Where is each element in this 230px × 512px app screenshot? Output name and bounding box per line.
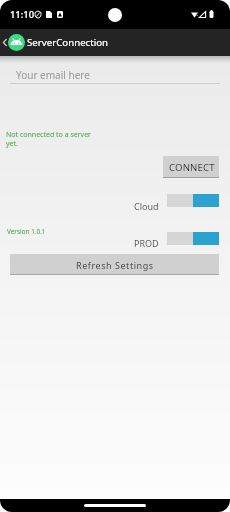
button[interactable]: Toggle: [167, 194, 219, 207]
staticText: Not connected to a server yet.: [6, 130, 96, 148]
staticText: 11:10: [10, 8, 35, 21]
staticText: ServerConnection: [27, 36, 109, 49]
staticText: PROD: [134, 237, 159, 249]
staticText: Version 1.0.1: [7, 227, 46, 236]
button[interactable]: Toggle: [167, 232, 219, 245]
staticText: Cloud: [134, 200, 159, 212]
button[interactable]: Refresh Settings: [10, 254, 219, 275]
button[interactable]: CONNECT: [163, 156, 219, 178]
staticText: Refresh Settings: [76, 259, 154, 271]
button[interactable]: Back: [0, 29, 9, 56]
staticText: Your email here: [16, 68, 90, 82]
staticText: CONNECT: [169, 161, 215, 174]
